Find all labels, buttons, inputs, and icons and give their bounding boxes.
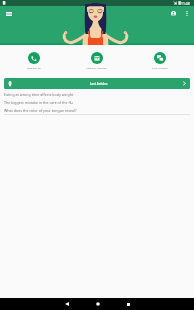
button[interactable]: Menu: [0, 6, 17, 21]
button[interactable]: Eating at wrong time affects body weight: [0, 90, 194, 98]
button[interactable]: More options: [180, 6, 194, 21]
staticText: Last Articles: [90, 82, 108, 86]
staticText: The biggest mistake in the care of the f…: [4, 100, 73, 105]
button[interactable]: What does the color of your tongue revea…: [0, 106, 194, 114]
staticText: Eating at wrong time affects body weight: [4, 92, 74, 97]
button[interactable]: Account: [166, 6, 180, 21]
staticText: 11:48: [181, 1, 190, 6]
button[interactable]: Back: [51, 298, 82, 310]
button[interactable]: Home: [82, 298, 113, 310]
button[interactable]: Find Activities: [128, 51, 191, 70]
button[interactable]: Last Articles: [4, 78, 190, 89]
button[interactable]: Recent apps: [113, 298, 144, 310]
staticText: Find Activities: [152, 66, 168, 69]
staticText: What does the color of your tongue revea…: [4, 108, 77, 113]
button[interactable]: Personal Calendar: [65, 51, 128, 70]
staticText: Seasonal Flu: [27, 66, 41, 69]
button[interactable]: Seasonal Flu: [3, 51, 65, 70]
button[interactable]: The biggest mistake in the care of the f…: [0, 98, 194, 106]
staticText: Personal Calendar: [86, 66, 107, 69]
